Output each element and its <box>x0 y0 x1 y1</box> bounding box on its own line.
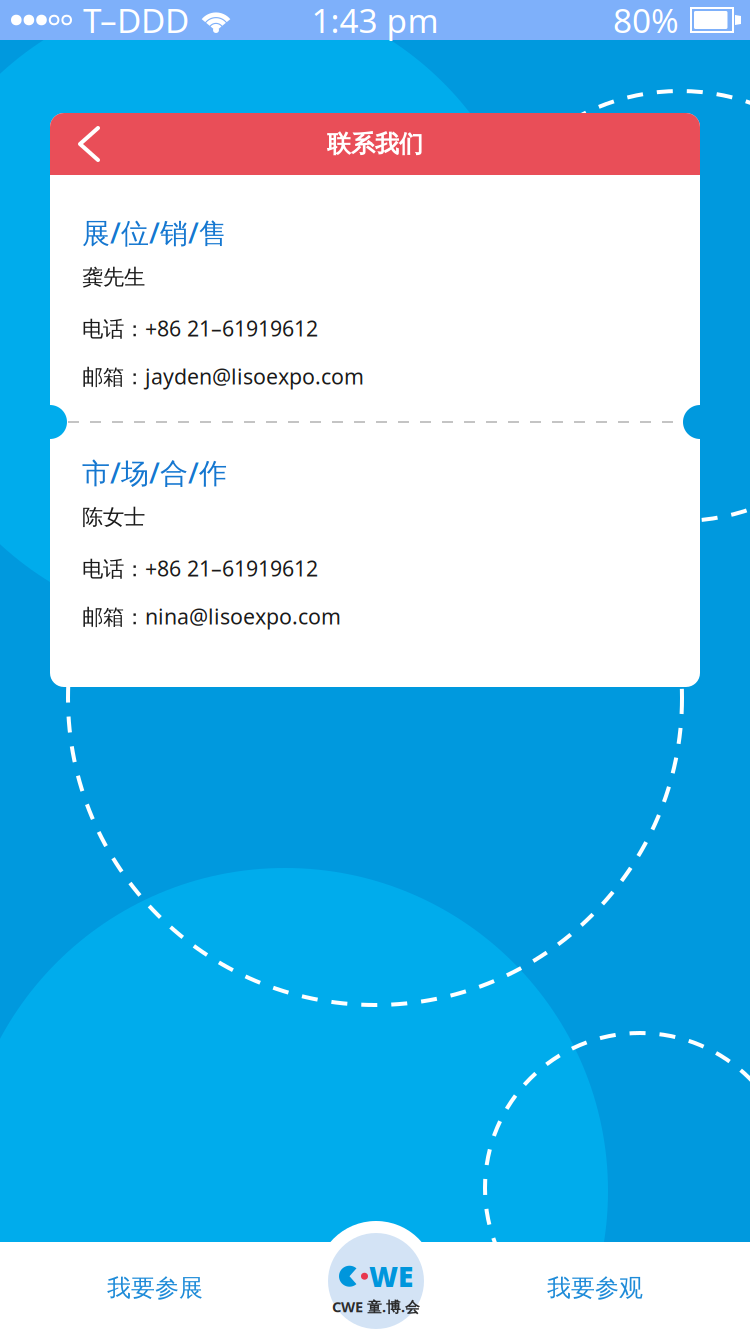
staticText: 展/位/销/售 <box>82 214 227 251</box>
staticText: 我要参展 <box>107 1273 203 1303</box>
button[interactable]: 我要参展 <box>0 1242 310 1334</box>
staticText: 市/场/合/作 <box>82 454 227 491</box>
staticText: 电话：+86 21–61919612 <box>82 554 318 582</box>
staticText: T–DDD <box>83 0 189 42</box>
button[interactable]: Back <box>50 113 124 175</box>
staticText: 邮箱：nina@lisoexpo.com <box>82 602 341 630</box>
staticText: 电话：+86 21–61919612 <box>82 314 318 342</box>
staticText: 龚先生 <box>82 264 145 290</box>
staticText: CWE 童.博.会 <box>332 1297 420 1316</box>
staticText: 我要参观 <box>547 1273 643 1303</box>
staticText: 80% <box>613 0 679 42</box>
button[interactable]: 我要参观 <box>440 1242 750 1334</box>
staticText: 陈女士 <box>82 504 145 530</box>
staticText: 1:43 pm <box>311 0 438 42</box>
staticText: 邮箱：jayden@lisoexpo.com <box>82 362 364 390</box>
staticText: 联系我们 <box>327 129 423 159</box>
staticText: WE <box>369 1258 413 1295</box>
